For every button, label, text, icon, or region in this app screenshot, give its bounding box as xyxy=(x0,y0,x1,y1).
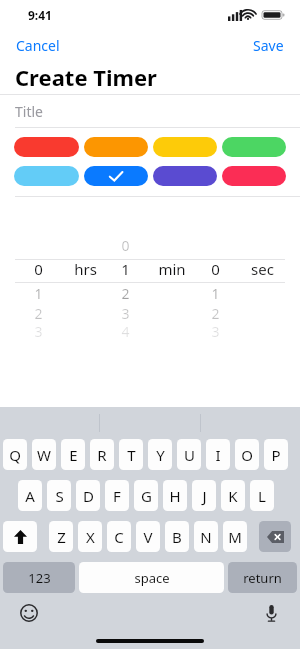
staticText: space xyxy=(134,569,170,587)
staticText: 0 xyxy=(121,236,130,255)
staticText: 2 xyxy=(34,304,43,323)
staticText: I xyxy=(215,445,221,465)
staticText: 0 xyxy=(34,259,43,279)
button[interactable]: X xyxy=(78,521,102,552)
button[interactable]: C xyxy=(107,521,131,552)
button[interactable]: W xyxy=(32,439,56,470)
button[interactable]: 123 xyxy=(3,562,75,593)
staticText: Save xyxy=(253,36,284,55)
button[interactable]: T xyxy=(119,439,143,470)
staticText: W xyxy=(37,445,51,465)
button[interactable]: Z xyxy=(49,521,73,552)
staticText: Y xyxy=(156,445,165,465)
button[interactable]: O xyxy=(235,439,259,470)
button[interactable]: Emoji xyxy=(16,600,42,626)
staticText: 123 xyxy=(28,569,51,587)
button[interactable]: Colour option xyxy=(84,166,148,186)
button[interactable]: L xyxy=(250,480,274,511)
staticText: P xyxy=(271,445,281,465)
staticText: Create Timer xyxy=(15,62,157,92)
button[interactable]: J xyxy=(192,480,216,511)
staticText: 0 xyxy=(211,259,220,279)
button[interactable]: Backspace xyxy=(259,521,291,552)
button[interactable]: Colour option xyxy=(222,166,286,186)
staticText: 2 xyxy=(211,304,220,323)
staticText: S xyxy=(55,486,64,506)
button[interactable]: Y xyxy=(148,439,172,470)
button[interactable]: U xyxy=(177,439,201,470)
button[interactable]: I xyxy=(206,439,230,470)
staticText: min xyxy=(158,259,186,279)
staticText: 3 xyxy=(34,322,43,341)
staticText: 1 xyxy=(121,259,130,279)
staticText: N xyxy=(200,527,212,547)
button[interactable]: Colour option xyxy=(153,166,217,186)
staticText: 1 xyxy=(211,284,220,303)
staticText: 4 xyxy=(121,322,130,341)
button[interactable]: Colour option xyxy=(84,137,148,157)
staticText: B xyxy=(172,527,182,547)
staticText: Cancel xyxy=(16,36,60,55)
staticText: T xyxy=(127,445,136,465)
staticText: F xyxy=(113,486,121,506)
button[interactable]: V xyxy=(136,521,160,552)
staticText: L xyxy=(258,486,266,506)
staticText: hrs xyxy=(74,259,97,279)
button[interactable]: M xyxy=(223,521,247,552)
staticText: J xyxy=(202,486,207,506)
button[interactable]: S xyxy=(47,480,71,511)
staticText: Title xyxy=(15,102,43,121)
button[interactable]: K xyxy=(221,480,245,511)
button[interactable]: G xyxy=(134,480,158,511)
staticText: 3 xyxy=(121,304,130,323)
button[interactable]: Dictation xyxy=(258,600,284,626)
button[interactable]: Save xyxy=(247,33,290,58)
staticText: sec xyxy=(251,259,274,279)
staticText: A xyxy=(25,486,35,506)
button[interactable]: space xyxy=(79,562,224,593)
staticText: V xyxy=(143,527,153,547)
button[interactable]: Cancel xyxy=(10,33,66,58)
staticText: G xyxy=(141,486,152,506)
button[interactable]: B xyxy=(165,521,189,552)
staticText: U xyxy=(184,445,195,465)
staticText: R xyxy=(97,445,107,465)
staticText: K xyxy=(228,486,238,506)
staticText: C xyxy=(114,527,124,547)
staticText: return xyxy=(243,569,282,587)
staticText: X xyxy=(86,527,95,547)
button[interactable]: Colour option xyxy=(14,137,79,157)
button[interactable]: A xyxy=(18,480,42,511)
staticText: 9:41 xyxy=(28,7,52,23)
button[interactable]: E xyxy=(61,439,85,470)
staticText: 2 xyxy=(121,284,130,303)
button[interactable]: Q xyxy=(3,439,27,470)
button[interactable]: Colour option xyxy=(222,137,286,157)
button[interactable]: H xyxy=(163,480,187,511)
button[interactable]: Shift xyxy=(3,521,37,552)
staticText: Z xyxy=(57,527,66,547)
staticText: H xyxy=(169,486,181,506)
button[interactable]: return xyxy=(228,562,297,593)
button[interactable]: P xyxy=(264,439,288,470)
button[interactable]: N xyxy=(194,521,218,552)
staticText: 3 xyxy=(211,322,220,341)
staticText: M xyxy=(228,527,242,547)
staticText: 1 xyxy=(34,284,43,303)
staticText: E xyxy=(69,445,78,465)
button[interactable]: Title xyxy=(0,95,300,127)
button[interactable]: R xyxy=(90,439,114,470)
button[interactable]: Colour option xyxy=(153,137,217,157)
staticText: Q xyxy=(9,445,21,465)
button[interactable]: Colour option xyxy=(14,166,79,186)
staticText: D xyxy=(83,486,94,506)
staticText: O xyxy=(241,445,253,465)
button[interactable]: F xyxy=(105,480,129,511)
button[interactable]: D xyxy=(76,480,100,511)
